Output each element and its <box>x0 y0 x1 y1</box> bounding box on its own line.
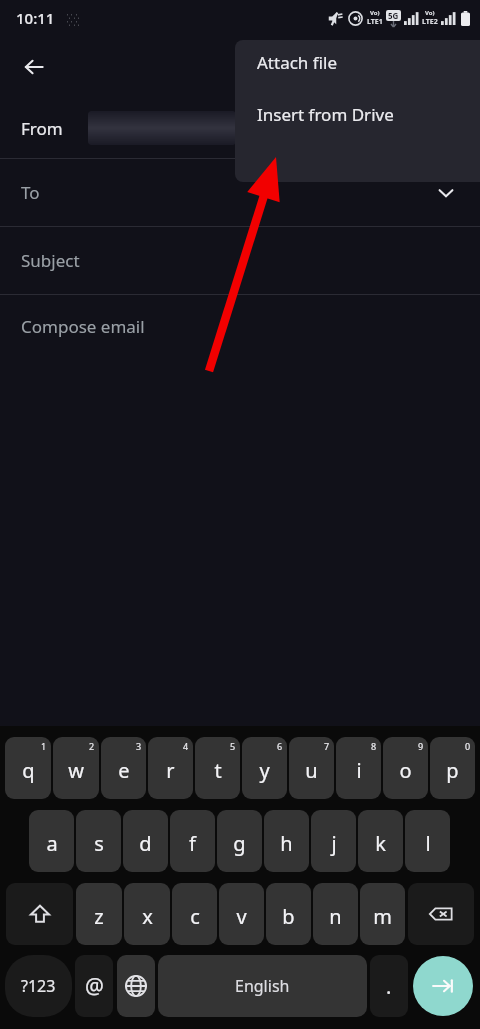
staticText: t <box>214 757 222 784</box>
staticText: Vo) <box>370 9 380 17</box>
button[interactable]: a <box>29 810 74 872</box>
staticText: j <box>331 830 337 857</box>
button[interactable]: Insert from Drive <box>235 84 480 144</box>
staticText: . <box>386 973 392 1000</box>
staticText: LTE2 <box>422 17 438 27</box>
button[interactable]: q <box>5 737 51 799</box>
staticText: 1 <box>41 740 47 752</box>
staticText: 6 <box>277 740 283 752</box>
staticText: r <box>166 757 175 784</box>
staticText: z <box>94 903 104 930</box>
button[interactable]: From <box>0 98 480 158</box>
staticText: a <box>46 830 58 857</box>
staticText: 7 <box>324 740 330 752</box>
staticText: h <box>280 830 293 857</box>
staticText: From <box>21 117 63 140</box>
staticText: 5 <box>230 740 236 752</box>
button[interactable]: z <box>76 883 122 945</box>
staticText: 10:11 <box>16 8 55 28</box>
button[interactable]: c <box>172 883 217 945</box>
staticText: x <box>142 903 153 930</box>
button[interactable]: t <box>195 737 240 799</box>
staticText: 8 <box>371 740 377 752</box>
button[interactable]: u <box>289 737 334 799</box>
staticText: @ <box>85 972 104 1001</box>
button[interactable]: To <box>0 159 480 226</box>
button[interactable]: Expand recipients <box>426 173 466 213</box>
staticText: 9 <box>418 740 424 752</box>
button[interactable]: s <box>76 810 121 872</box>
button[interactable]: Change language <box>117 955 155 1017</box>
button[interactable]: English <box>158 955 367 1017</box>
staticText: p <box>446 757 459 784</box>
staticText: Attach file <box>257 51 337 74</box>
staticText: v <box>236 903 247 930</box>
staticText: Compose email <box>21 315 145 338</box>
staticText: Vo) <box>425 9 435 17</box>
button[interactable]: Subject <box>0 227 480 294</box>
button[interactable]: Backspace <box>408 883 474 945</box>
button[interactable]: Attach file <box>235 40 480 84</box>
button[interactable]: e <box>101 737 146 799</box>
staticText: Insert from Drive <box>257 103 394 126</box>
staticText: o <box>399 757 412 784</box>
button[interactable]: At sign <box>75 955 113 1017</box>
button[interactable]: j <box>311 810 356 872</box>
button[interactable]: ?123 <box>5 955 72 1017</box>
staticText: l <box>425 830 431 857</box>
staticText: f <box>189 830 196 857</box>
staticText: w <box>68 757 84 784</box>
staticText: 2 <box>89 740 95 752</box>
button[interactable]: w <box>53 737 99 799</box>
staticText: m <box>373 903 392 930</box>
staticText: English <box>235 975 290 997</box>
button[interactable]: l <box>405 810 450 872</box>
staticText: b <box>282 903 295 930</box>
button[interactable]: v <box>219 883 264 945</box>
button[interactable]: Compose email <box>0 295 480 357</box>
staticText: ?123 <box>21 975 56 997</box>
staticText: Subject <box>21 249 80 272</box>
button[interactable]: n <box>313 883 358 945</box>
button[interactable]: f <box>170 810 215 872</box>
button[interactable]: r <box>148 737 193 799</box>
button[interactable]: k <box>358 810 403 872</box>
button[interactable]: g <box>217 810 262 872</box>
button[interactable]: y <box>242 737 287 799</box>
staticText: 0 <box>465 740 471 752</box>
button[interactable]: i <box>336 737 381 799</box>
button[interactable]: Period <box>370 955 408 1017</box>
button[interactable]: Shift <box>6 883 73 945</box>
staticText: i <box>356 757 362 784</box>
staticText: 4 <box>183 740 189 752</box>
staticText: To <box>21 181 40 204</box>
staticText: e <box>118 757 130 784</box>
button[interactable]: Enter <box>413 956 473 1016</box>
staticText: c <box>190 903 200 930</box>
staticText: 3 <box>136 740 142 752</box>
staticText: q <box>22 757 35 784</box>
staticText: u <box>305 757 318 784</box>
staticText: g <box>233 830 246 857</box>
button[interactable]: d <box>123 810 168 872</box>
button[interactable]: b <box>266 883 311 945</box>
staticText: k <box>375 830 386 857</box>
button[interactable]: x <box>124 883 170 945</box>
staticText: y <box>259 757 270 784</box>
staticText: n <box>329 903 342 930</box>
staticText: d <box>139 830 152 857</box>
staticText: LTE1 <box>367 17 383 27</box>
button[interactable]: p <box>430 737 475 799</box>
button[interactable]: h <box>264 810 309 872</box>
button[interactable]: m <box>360 883 405 945</box>
button[interactable]: Navigate up <box>12 45 56 89</box>
button[interactable]: o <box>383 737 428 799</box>
staticText: s <box>94 830 104 857</box>
staticText: 5G <box>388 10 399 21</box>
